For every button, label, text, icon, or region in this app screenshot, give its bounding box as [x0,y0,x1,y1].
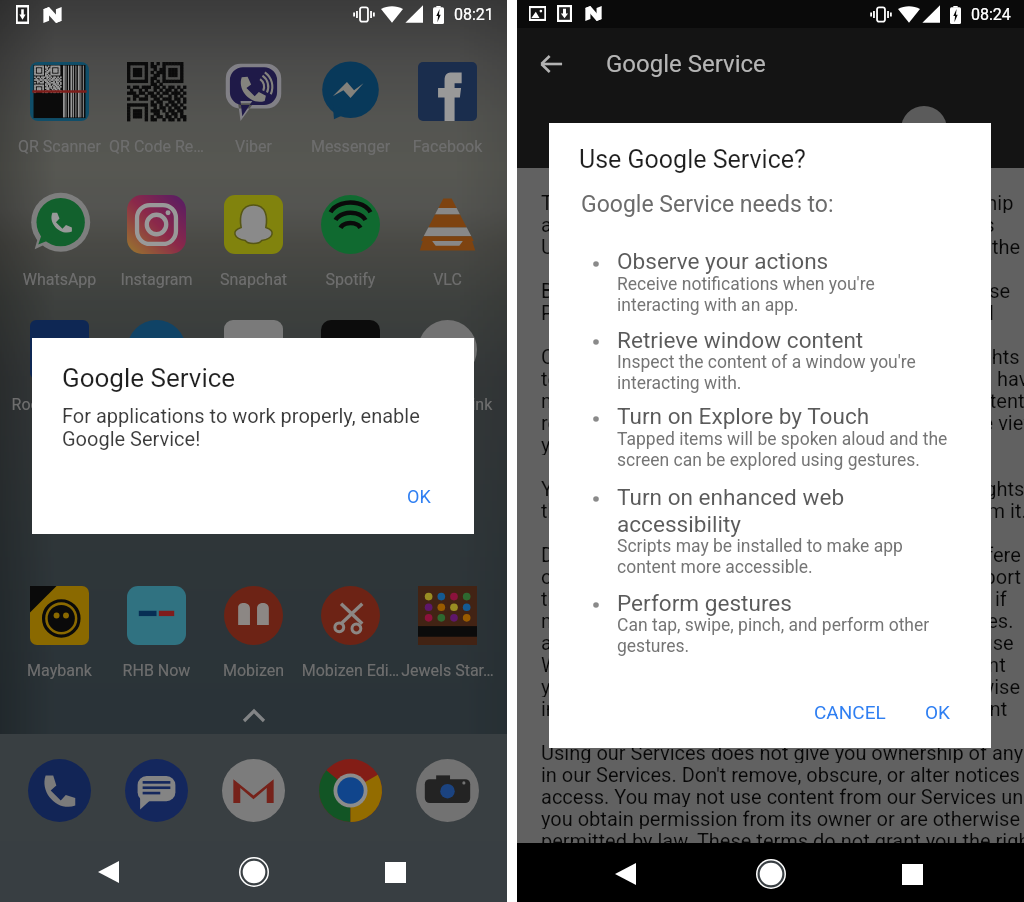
staticText: You retain ownership of any intellectual… [541,477,1024,499]
staticText: Facebook [398,137,497,156]
button[interactable]: Recents [889,851,935,897]
staticText: make sure that it is legal. We may also … [541,389,1024,411]
staticText: Tapped items will be spoken aloud and th… [617,429,948,450]
staticText: Google Service needs to: [581,191,834,218]
staticText: temporarily or permanently, any content … [541,367,1024,389]
staticText: These Terms do not create any agency or … [541,191,1014,213]
staticText: 08:21 [454,5,494,24]
staticText: remove, obscure, or alter any legal noti… [541,873,1024,895]
staticText: Root Browser [10,395,109,414]
staticText: relating to our Services. But that does … [541,411,1024,433]
button[interactable]: Phone [28,759,91,822]
staticText: Router Keyg… [204,395,303,414]
staticText: Observe your actions [617,248,829,274]
staticText: Instagram [107,270,206,289]
staticText: access. You may not use content from our… [541,785,1024,807]
button[interactable]: Gmail [222,759,285,822]
staticText: applies. These terms do not grant you th… [541,631,1014,653]
staticText: Mobizen Edi… [301,661,400,680]
staticText: in our Services. Don't remove, obscure, … [541,763,1020,785]
staticText: Messenger [301,137,400,156]
staticText: to use any branding or logos used in our… [541,851,1024,873]
staticText: CANCEL [814,701,886,723]
staticText: Maybank [10,661,109,680]
staticText: interacting with. [617,373,742,394]
staticText: Privacy Policies and the additional term… [541,301,994,323]
staticText: Use Google Service? [579,145,806,174]
button[interactable]: Home [230,848,277,895]
staticText: interacting with an app. [617,295,799,316]
staticText: you're looking at the content of a windo… [541,433,909,455]
staticText: Can tap, swipe, pinch, and perform other [617,615,930,636]
button[interactable]: Back [527,40,575,88]
staticText: QR Code Rea… [107,137,206,156]
staticText: Meine Bank [301,395,400,414]
button[interactable]: Home [747,850,794,897]
staticText: accessibility [617,511,741,537]
staticText: Inspect the content of a window you're [617,352,916,373]
button[interactable]: Back [602,851,648,897]
staticText: Spotify [301,270,400,289]
staticText: permitted by law. These terms do not gra… [541,829,1024,851]
staticText: zANTI [107,395,206,414]
staticText: Using our Services does not give you own… [541,235,1024,257]
staticText: screen can be explored using gestures. [617,450,920,471]
button[interactable]: Camera [416,759,479,822]
staticText: Retrieve window content [617,327,864,353]
staticText: Jewels Star… [398,661,497,680]
button[interactable]: Messages [125,759,188,822]
staticText: Don't misuse our Services. For example, … [541,543,1024,565]
staticText: WhatsApp [10,270,109,289]
staticText: Scripts may be installed to make app [617,536,903,557]
button[interactable]: OK [391,475,447,517]
staticText: By using our Services you agree that Goo… [541,279,1011,301]
staticText: Google Service [62,363,236,393]
staticText: you obtain permission from its owner or … [541,675,1021,697]
staticText: VLC [398,270,497,289]
staticText: OK [407,486,431,507]
button[interactable]: CANCEL [801,689,899,735]
staticText: Receive notifications when you're [617,274,875,295]
button[interactable]: OK [910,689,964,735]
staticText: We may also remove or refuse to display … [541,653,1006,675]
staticText: that we provide you. We may suspend our … [541,587,1007,609]
staticText: Using our Services does not give you own… [541,741,1024,763]
staticText: at all. Nothing in these Terms shall be … [541,213,995,235]
staticText: Turn on enhanced web [617,484,845,510]
staticText: Viber [204,137,303,156]
staticText: Mobizen [204,661,303,680]
staticText: our Services only as permitted by law, i… [541,565,1021,587]
staticText: Google Service! [62,427,201,450]
staticText: Google Service [606,50,766,78]
staticText: Content in the Services may be protected… [541,345,1024,367]
staticText: may be suspended or terminated. Using ou… [541,609,1014,631]
staticText: Turn on Explore by Touch [617,403,870,429]
staticText: 08:24 [971,5,1011,24]
staticText: OK [925,701,950,723]
button[interactable]: Recents [372,849,418,895]
staticText: Snapchat [204,270,303,289]
staticText: For applications to work properly, enabl… [62,404,420,427]
staticText: Perform gestures [617,590,792,616]
staticText: content more accessible. [617,557,813,578]
button[interactable]: Back [85,849,131,895]
staticText: you obtain permission from its owner or … [541,807,1021,829]
staticText: in or along with our Services. We may re… [541,697,1008,719]
staticText: PB Sharelink [398,395,497,414]
staticText: gestures. [617,636,690,657]
button[interactable]: Chrome [319,759,382,822]
staticText: QR Scanner [10,137,109,156]
staticText: that belongs to you stays yours, and we … [541,499,1024,521]
staticText: RHB Now [107,661,206,680]
